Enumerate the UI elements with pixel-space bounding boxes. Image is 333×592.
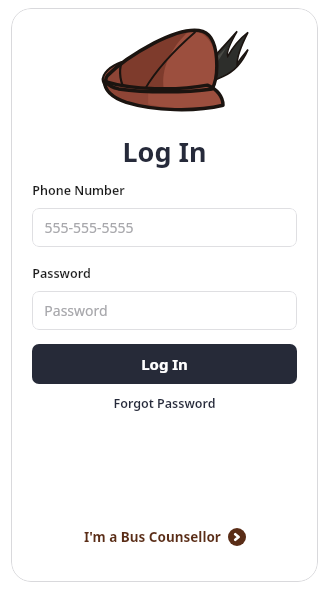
button[interactable]: Log In xyxy=(32,344,297,384)
staticText: Forgot Password xyxy=(113,395,216,412)
staticText: 555-555-5555 xyxy=(44,218,134,237)
button[interactable]: 555-555-5555 xyxy=(32,208,297,247)
button[interactable]: Forgot Password xyxy=(109,392,220,415)
staticText: Phone Number xyxy=(32,182,125,199)
staticText: I'm a Bus Counsellor xyxy=(84,528,221,546)
button[interactable]: Password xyxy=(32,291,297,330)
other: Continue as Bus Counsellor xyxy=(228,528,246,546)
staticText: Password xyxy=(32,265,91,282)
staticText: Log In xyxy=(122,133,207,170)
staticText: Password xyxy=(44,301,108,320)
button[interactable]: I'm a Bus Counsellor xyxy=(78,524,252,550)
staticText: Log In xyxy=(141,354,188,374)
